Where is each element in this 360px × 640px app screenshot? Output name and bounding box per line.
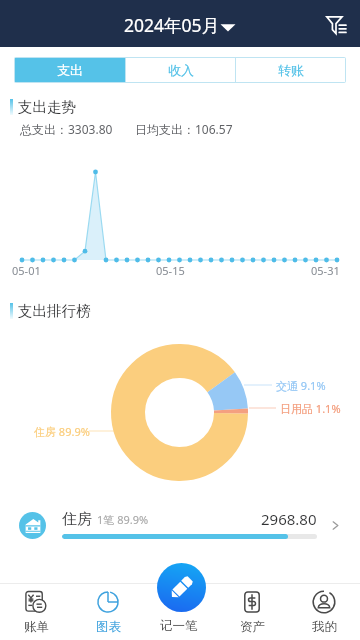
button[interactable]: 收入 [126, 58, 235, 82]
staticText: 转账 [278, 62, 304, 78]
button[interactable]: 资产 [216, 584, 288, 640]
staticText: 05-31 [311, 263, 340, 278]
button[interactable]: 转账 [236, 58, 345, 82]
button[interactable]: 住房 [0, 503, 360, 549]
button[interactable]: 图表 [72, 584, 144, 640]
staticText: 05-15 [156, 263, 185, 278]
staticText: 支出走势 [18, 98, 76, 114]
staticText: 记一笔 [160, 618, 198, 634]
button[interactable]: 我的 [288, 584, 360, 640]
staticText: 05-01 [12, 263, 41, 278]
staticText: 资产 [240, 619, 265, 635]
staticText: 住房 89.9% [34, 424, 90, 439]
button[interactable]: Filter [323, 11, 349, 37]
staticText: 收入 [168, 62, 194, 78]
staticText: 支出排行榜 [18, 302, 91, 318]
staticText: 我的 [312, 619, 337, 635]
staticText: 图表 [96, 619, 121, 635]
button[interactable]: 账单 [0, 584, 72, 640]
staticText: 交通 9.1% [276, 378, 326, 393]
staticText: 2968.80 [261, 509, 317, 529]
staticText: 账单 [24, 619, 49, 635]
staticText: 1笔 89.9% [97, 512, 149, 527]
button[interactable]: 支出 [15, 58, 125, 82]
staticText: 2024年05月 [124, 13, 220, 37]
staticText: 住房 [62, 510, 92, 529]
staticText: 总支出：3303.80 [20, 121, 113, 137]
staticText: 日均支出：106.57 [135, 121, 233, 137]
staticText: 日用品 1.1% [280, 401, 341, 416]
button[interactable]: 记一笔 [157, 563, 206, 612]
staticText: 支出 [57, 62, 83, 78]
